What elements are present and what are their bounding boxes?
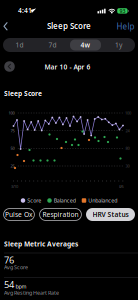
staticText: 30 — [125, 163, 129, 169]
staticText: 7d — [48, 41, 56, 49]
staticText: 25 — [10, 163, 14, 169]
button[interactable]: 7d — [36, 38, 69, 52]
button[interactable]: Respiration — [39, 208, 82, 221]
button[interactable]: HRV Status — [86, 208, 135, 221]
staticText: 100 — [8, 110, 14, 116]
staticText: Sleep Score — [47, 20, 91, 31]
button[interactable]: 1d — [3, 38, 36, 52]
staticText: 54 — [4, 278, 14, 290]
staticText: 93 — [119, 7, 125, 15]
staticText: 4w — [80, 41, 90, 49]
staticText: Sleep Score — [4, 89, 42, 98]
staticText: 100 — [125, 110, 131, 116]
button[interactable]: 4w — [69, 38, 102, 52]
button[interactable]: Help — [116, 21, 134, 32]
staticText: Sleep Metric Averages — [4, 240, 78, 248]
staticText: bpm — [15, 283, 26, 290]
staticText: Respiration — [42, 210, 78, 219]
staticText: Avg Resting Heart Rate — [4, 289, 59, 296]
staticText: 4/6 — [118, 184, 123, 189]
staticText: Mar 10 - Apr 6 — [44, 62, 90, 71]
button[interactable]: Pulse Ox — [3, 208, 35, 221]
staticText: 4:41 — [18, 6, 32, 15]
staticText: 24 — [125, 128, 129, 133]
staticText: 50 — [10, 146, 14, 151]
staticText: 75 — [10, 128, 14, 133]
staticText: Avg Score — [4, 264, 28, 271]
staticText: 3/10 — [11, 184, 18, 189]
staticText: Pulse Ox — [5, 210, 33, 219]
staticText: 1d — [15, 41, 23, 49]
staticText: Score — [27, 197, 41, 204]
staticText: 1y — [115, 41, 122, 49]
staticText: HRV Status — [92, 210, 128, 219]
staticText: Help — [116, 21, 134, 32]
button[interactable]: Previous period — [4, 61, 15, 72]
staticText: 76 — [4, 254, 14, 266]
button[interactable]: 1y — [102, 38, 135, 52]
staticText: 80 — [125, 146, 129, 151]
staticText: Balanced — [54, 197, 76, 204]
staticText: Unbalanced — [88, 197, 117, 204]
button[interactable]: Back — [1, 21, 10, 31]
